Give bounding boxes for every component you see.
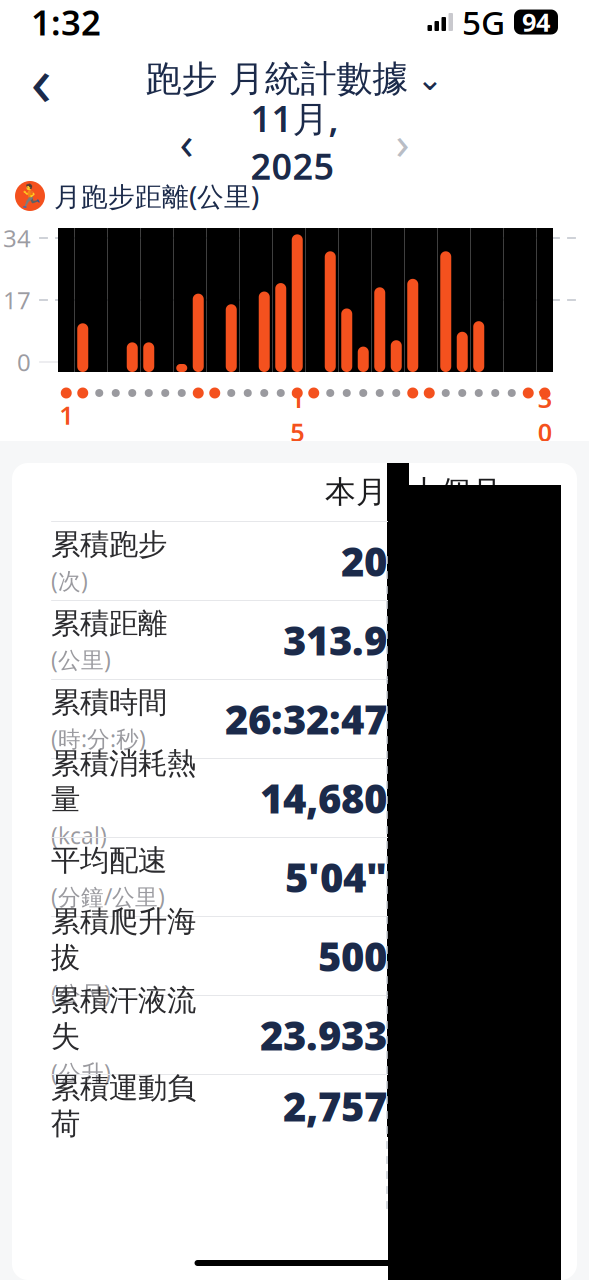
- staticText: 17: [3, 284, 31, 316]
- staticText: 14,680: [260, 771, 387, 824]
- staticText: (公升): [51, 1057, 111, 1088]
- staticText: 34: [3, 222, 31, 254]
- staticText: 20: [341, 534, 387, 587]
- button[interactable]: 跑步 月統計數據: [145, 57, 443, 101]
- button[interactable]: Back: [13, 51, 69, 107]
- staticText: 30: [538, 381, 552, 449]
- staticText: (時:分:秒): [51, 723, 146, 754]
- staticText: 1: [59, 398, 73, 432]
- staticText: 上個月: [409, 473, 502, 511]
- staticText: (公尺): [51, 978, 111, 1009]
- staticText: 313.9: [283, 613, 387, 666]
- staticText: 平均配速: [51, 842, 167, 878]
- staticText: 本月: [325, 473, 387, 511]
- staticText: ⌄: [416, 61, 443, 97]
- staticText: 0: [17, 346, 31, 378]
- staticText: 累積距離: [51, 605, 167, 641]
- staticText: 94: [522, 5, 550, 39]
- staticText: (公里): [51, 644, 111, 675]
- staticText: 5G: [462, 0, 505, 44]
- staticText: ‹: [179, 112, 193, 172]
- staticText: 累積爬升海拔: [51, 903, 196, 975]
- staticText: 1:32: [31, 0, 101, 45]
- staticText: 累積消耗熱量: [51, 745, 196, 817]
- staticText: 5'04": [285, 850, 387, 903]
- staticText: 累積運動負荷: [51, 1070, 196, 1142]
- staticText: 2,757: [283, 1079, 387, 1132]
- button[interactable]: Previous month: [163, 119, 209, 165]
- staticText: ‹: [30, 33, 51, 125]
- staticText: 累積跑步: [51, 526, 167, 562]
- staticText: 🏃: [16, 183, 44, 209]
- button[interactable]: Next month: [379, 119, 425, 165]
- staticText: 累積汗液流失: [51, 982, 196, 1054]
- staticText: 500: [318, 929, 387, 982]
- staticText: 15: [290, 381, 304, 449]
- staticText: 累積時間: [51, 684, 167, 720]
- staticText: (分鐘/公里): [51, 881, 165, 912]
- staticText: 月跑步距離(公里): [54, 178, 259, 214]
- staticText: 11月, 2025: [250, 94, 338, 190]
- staticText: 26:32:47: [225, 692, 387, 745]
- staticText: (次): [51, 565, 88, 596]
- staticText: ›: [395, 112, 409, 172]
- staticText: (kcal): [51, 820, 107, 851]
- staticText: 23.933: [260, 1008, 387, 1061]
- staticText: 跑步 月統計數據: [145, 57, 408, 101]
